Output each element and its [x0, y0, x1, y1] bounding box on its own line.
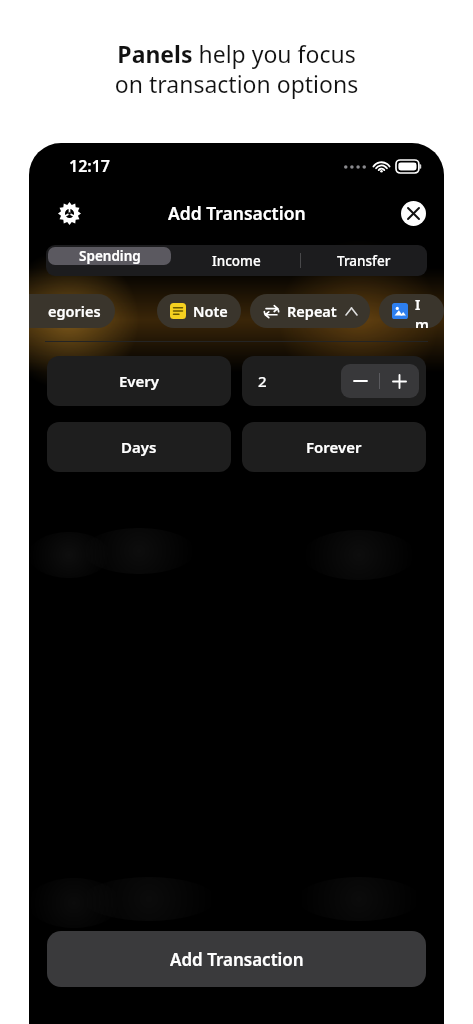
staticText: Add Transaction	[168, 201, 306, 225]
staticText: Note	[193, 301, 228, 321]
button[interactable]: Transfer	[300, 245, 427, 276]
button[interactable]: Add Transaction	[47, 931, 426, 987]
button[interactable]: Repeat	[250, 294, 370, 328]
button[interactable]: egories	[29, 294, 115, 328]
button[interactable]: Every	[47, 356, 231, 406]
staticText: Add Transaction	[170, 948, 304, 971]
staticText: Spending	[79, 247, 141, 265]
button[interactable]: Forever	[242, 422, 426, 472]
button[interactable]: Income	[173, 245, 300, 276]
staticText: 12:17	[69, 155, 111, 177]
staticText: 2	[258, 371, 267, 391]
staticText: Ima	[415, 294, 431, 328]
button[interactable]: Spending	[48, 247, 171, 265]
button[interactable]: Increase	[380, 364, 419, 398]
button[interactable]: 2	[242, 356, 426, 406]
staticText: Panels help you focus on transaction opt…	[0, 38, 473, 100]
button[interactable]: Note	[157, 294, 241, 328]
staticText: Income	[212, 252, 261, 270]
staticText: egories	[48, 301, 101, 321]
button[interactable]: Decrease	[341, 364, 379, 398]
staticText: Repeat	[287, 301, 337, 321]
button[interactable]: Settings	[49, 193, 89, 233]
staticText: Forever	[306, 437, 362, 457]
staticText: Every	[119, 371, 160, 391]
button[interactable]: Close	[401, 201, 426, 226]
staticText: Days	[121, 437, 157, 457]
button[interactable]: Days	[47, 422, 231, 472]
button[interactable]: Ima	[379, 294, 444, 328]
staticText: Transfer	[337, 252, 391, 270]
